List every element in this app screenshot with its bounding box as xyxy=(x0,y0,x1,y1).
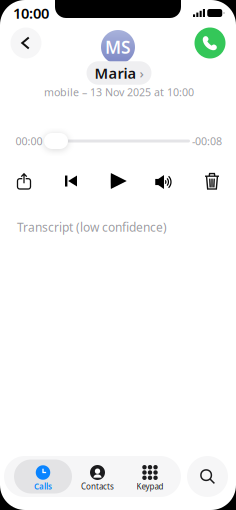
staticText: MS xyxy=(105,35,131,58)
button[interactable]: Speaker xyxy=(149,168,181,196)
button[interactable]: Call xyxy=(193,26,227,60)
staticText: mobile – 13 Nov 2025 at 10:00 xyxy=(44,85,194,99)
staticText: Keypad xyxy=(136,481,163,492)
button[interactable]: Delete xyxy=(196,167,228,195)
staticText: Contacts xyxy=(81,481,114,492)
button[interactable]: Search xyxy=(185,454,229,498)
button[interactable]: Share xyxy=(8,167,40,195)
button[interactable]: Maria xyxy=(86,61,151,85)
button[interactable]: Play xyxy=(103,167,135,195)
staticText: Calls xyxy=(34,481,52,492)
button[interactable]: Contacts xyxy=(68,459,126,493)
button[interactable]: Calls xyxy=(14,459,72,493)
staticText: Maria xyxy=(94,63,136,83)
button[interactable]: Keypad xyxy=(121,459,179,493)
staticText: 10:00 xyxy=(13,3,49,23)
button[interactable]: Back xyxy=(9,26,43,60)
button[interactable]: Previous xyxy=(55,167,87,195)
staticText: -00:08 xyxy=(192,134,222,148)
staticText: Transcript (low confidence) xyxy=(17,219,167,235)
staticText: 00:00 xyxy=(15,134,42,148)
staticText: › xyxy=(139,64,143,82)
